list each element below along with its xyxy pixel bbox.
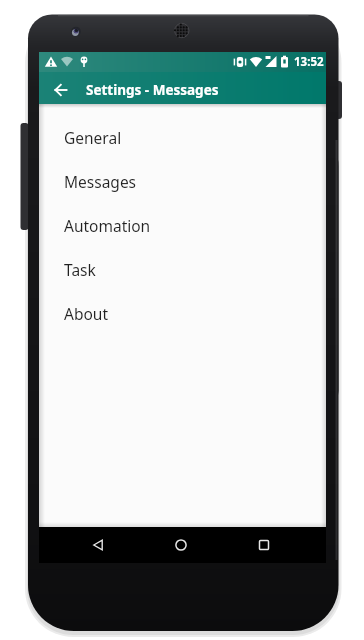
button[interactable] [78,527,118,563]
button[interactable]: Messages [39,159,326,203]
staticText: 13:52 [294,54,324,70]
staticText: Automation [64,215,151,236]
button[interactable]: General [39,115,326,159]
button[interactable] [47,76,75,104]
staticText: Task [64,259,96,280]
button[interactable] [161,527,201,563]
button[interactable]: Task [39,247,326,291]
button[interactable]: Automation [39,203,326,247]
staticText: Settings - Messages [86,81,219,99]
staticText: About [64,303,108,324]
button[interactable]: About [39,291,326,335]
staticText: Messages [64,171,137,192]
button[interactable] [244,527,284,563]
staticText: General [64,127,122,148]
